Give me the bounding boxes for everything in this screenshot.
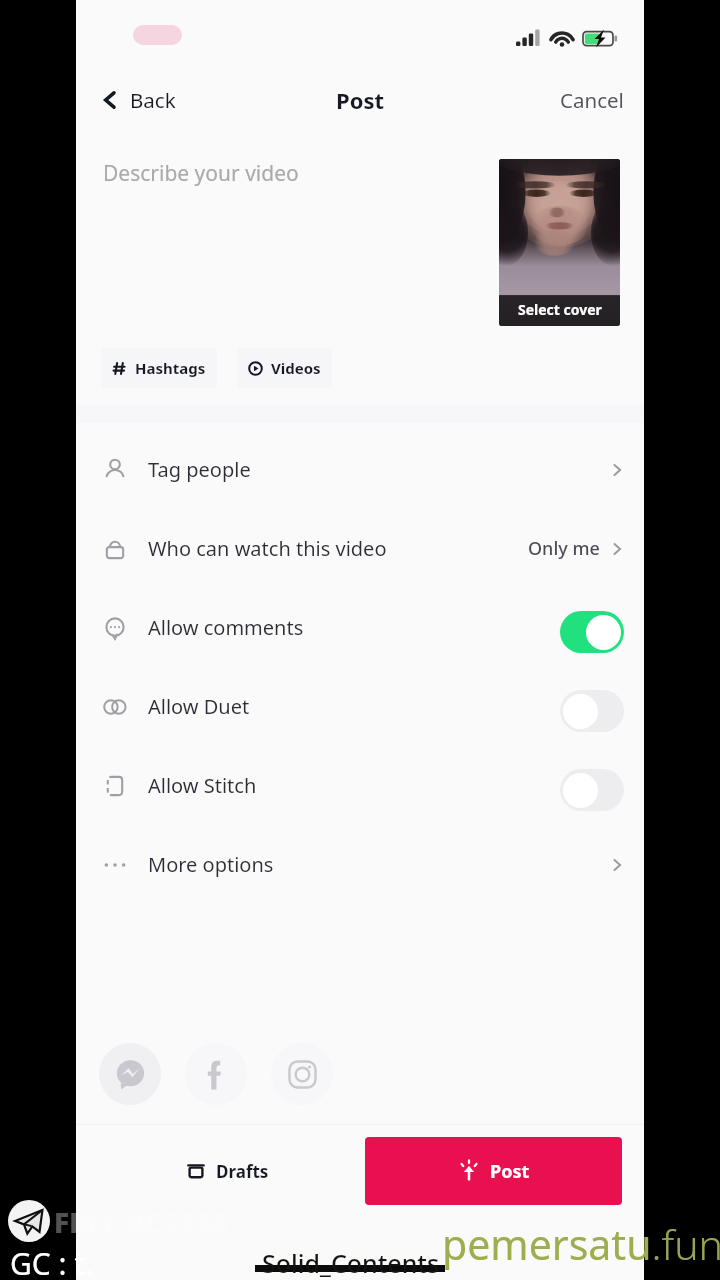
staticText: Post [490, 1159, 530, 1184]
staticText: Only me [528, 536, 600, 561]
button[interactable]: Cancel [540, 76, 644, 124]
button[interactable]: Allow Duet [76, 667, 644, 746]
button[interactable]: More options [76, 825, 644, 904]
button[interactable]: Who can watch this video [76, 509, 644, 588]
staticText: Select cover [518, 300, 602, 319]
staticText: GC : t. [10, 1243, 94, 1280]
staticText: FREE ACCESS [54, 1203, 229, 1241]
staticText: Who can watch this video [148, 535, 387, 562]
button[interactable]: Allow comments [76, 588, 644, 667]
staticText: Tag people [148, 456, 251, 483]
button[interactable]: Videos [237, 348, 332, 388]
button[interactable]: Facebook [185, 1043, 247, 1105]
button[interactable]: Post [365, 1137, 622, 1205]
staticText: Solid_Contents [262, 1246, 440, 1280]
button[interactable]: Allow Stitch [76, 746, 644, 825]
button[interactable]: Toggle on [560, 611, 624, 653]
staticText: Post [336, 85, 385, 115]
staticText: Describe your video [103, 159, 299, 188]
button[interactable]: Back [76, 76, 190, 124]
staticText: Hashtags [135, 358, 206, 378]
button[interactable]: Hashtags [101, 348, 217, 388]
button[interactable]: Toggle off [560, 769, 624, 811]
staticText: More options [148, 851, 274, 878]
button[interactable]: Messenger [99, 1043, 161, 1105]
staticText: Cancel [560, 86, 624, 114]
button[interactable]: Tag people [76, 430, 644, 509]
staticText: Allow Stitch [148, 772, 257, 799]
staticText: Allow Duet [148, 693, 250, 720]
button[interactable]: Drafts [98, 1137, 357, 1205]
staticText: Drafts [216, 1160, 269, 1183]
button[interactable]: Instagram [271, 1043, 333, 1105]
staticText: pemersatu.fun [442, 1216, 720, 1272]
staticText: Back [130, 86, 176, 114]
button[interactable]: Select cover [499, 159, 620, 326]
button[interactable]: Toggle off [560, 690, 624, 732]
staticText: Allow comments [148, 614, 304, 641]
staticText: Videos [271, 358, 321, 378]
